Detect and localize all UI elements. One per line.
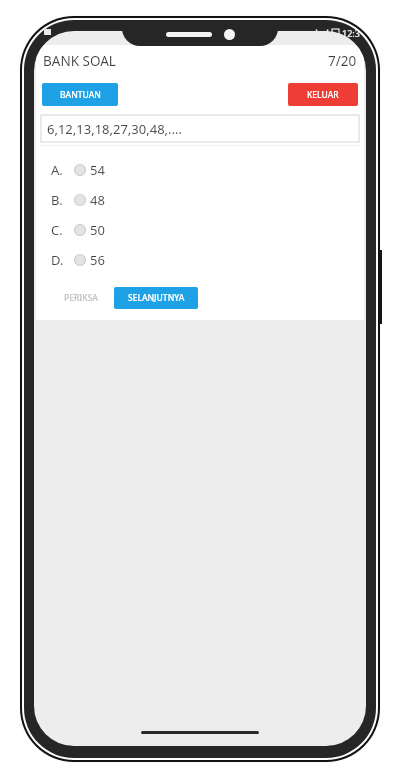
staticText: SELANJUTNYA [128, 292, 185, 304]
staticText: 12:3 [342, 27, 360, 39]
staticText: PERIKSA [64, 292, 98, 304]
staticText: A. [51, 161, 63, 179]
other: Select option D. [74, 254, 86, 266]
staticText: D. [51, 251, 64, 269]
staticText: 48 [90, 191, 105, 209]
button[interactable]: BANTUAN [42, 83, 118, 106]
button[interactable]: D. [36, 245, 364, 275]
staticText: B. [51, 191, 63, 209]
other: Select option C. [74, 224, 86, 236]
button[interactable]: SELANJUTNYA [114, 287, 198, 309]
staticText: C. [51, 221, 63, 239]
staticText: 56 [90, 251, 105, 269]
staticText: 54 [90, 161, 105, 179]
staticText: 7/20 [328, 52, 357, 70]
staticText: KELUAR [307, 89, 339, 101]
other: Select option B. [74, 194, 86, 206]
staticText: BANTUAN [60, 89, 101, 101]
button[interactable]: C. [36, 215, 364, 245]
staticText: BANK SOAL [43, 52, 116, 70]
other: Select option A. [74, 164, 86, 176]
button[interactable]: A. [36, 155, 364, 185]
button[interactable]: KELUAR [288, 83, 358, 106]
button[interactable]: B. [36, 185, 364, 215]
staticText: 50 [90, 221, 105, 239]
button[interactable]: PERIKSA [56, 287, 106, 309]
staticText: 6,12,13,18,27,30,48,.... [47, 120, 182, 138]
